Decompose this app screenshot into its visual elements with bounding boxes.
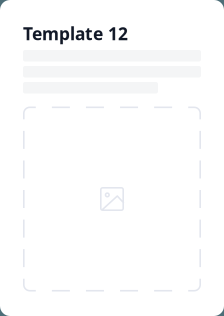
button[interactable]: Add image xyxy=(23,106,201,291)
staticText: Template 12 xyxy=(23,22,128,45)
